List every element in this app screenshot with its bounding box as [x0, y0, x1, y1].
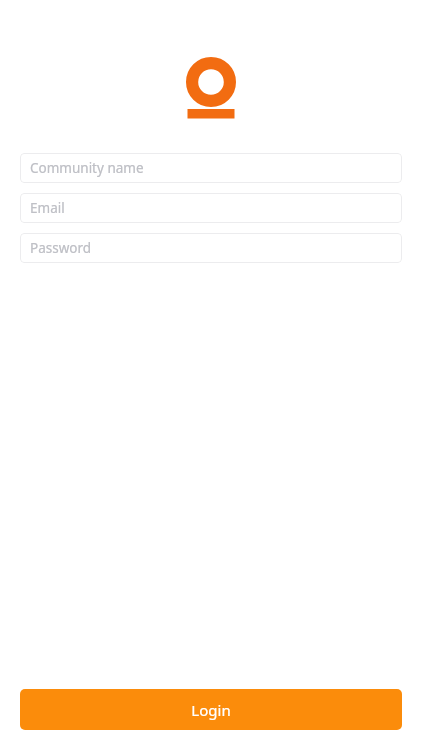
- staticText: Password: [30, 239, 92, 257]
- staticText: Community name: [30, 159, 144, 177]
- staticText: Email: [30, 199, 65, 217]
- button[interactable]: Login: [20, 689, 402, 730]
- button[interactable]: Password: [20, 233, 402, 263]
- staticText: Login: [191, 700, 231, 720]
- button[interactable]: Community name: [20, 153, 402, 183]
- button[interactable]: Email: [20, 193, 402, 223]
